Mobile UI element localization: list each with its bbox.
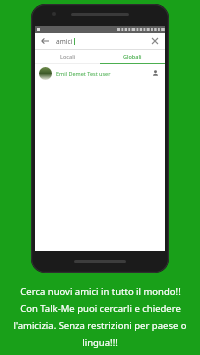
staticText: lingua!!!: [82, 336, 118, 349]
staticText: Cerca nuovi amici in tutto il mondo!!: [20, 285, 181, 298]
button[interactable]: Back: [39, 35, 51, 47]
staticText: amici: [56, 37, 73, 46]
staticText: Globali: [123, 53, 142, 60]
button[interactable]: Globali: [100, 50, 165, 63]
button[interactable]: Locali: [35, 50, 100, 63]
staticText: Locali: [60, 53, 76, 60]
staticText: l'amicizia. Senza restrizioni per paese …: [13, 319, 187, 332]
button[interactable]: Emil Demet Test user: [35, 64, 165, 82]
button[interactable]: Clear: [149, 35, 161, 47]
button[interactable]: Add friend: [150, 68, 161, 79]
staticText: Emil Demet Test user: [56, 70, 111, 77]
staticText: Con Talk-Me puoi cercarli e chiedere: [20, 302, 181, 315]
